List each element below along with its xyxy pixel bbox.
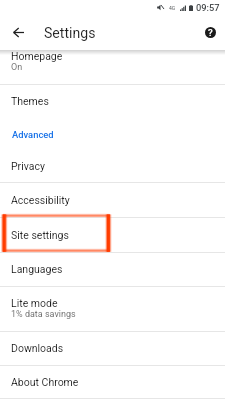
button[interactable]: Homepage — [0, 50, 225, 84]
staticText: On — [11, 62, 23, 73]
staticText: 1% data savings — [11, 309, 76, 320]
button[interactable]: About Chrome — [0, 365, 225, 398]
staticText: Site settings — [11, 229, 69, 241]
button[interactable]: Downloads — [0, 331, 225, 365]
staticText: Themes — [11, 95, 49, 107]
staticText: About Chrome — [11, 376, 79, 388]
staticText: Settings — [44, 25, 96, 42]
button[interactable]: Languages — [0, 252, 225, 286]
button[interactable]: Privacy — [0, 149, 225, 182]
staticText: Accessibility — [11, 194, 70, 206]
button[interactable]: Site settings — [0, 217, 225, 252]
staticText: Lite mode — [11, 297, 58, 309]
button[interactable]: Themes — [0, 84, 225, 118]
button[interactable]: Navigate up — [6, 20, 30, 44]
staticText: 4G — [169, 5, 176, 11]
staticText: 09:57 — [196, 2, 220, 13]
staticText: Downloads — [11, 342, 64, 354]
staticText: Advanced — [12, 129, 54, 140]
staticText: Homepage — [11, 50, 63, 62]
button[interactable]: Help and feedback — [200, 22, 220, 42]
button[interactable]: Accessibility — [0, 182, 225, 217]
staticText: ? — [208, 27, 213, 38]
staticText: Languages — [11, 263, 63, 275]
staticText: Privacy — [11, 160, 45, 172]
button[interactable]: Lite mode — [0, 286, 225, 331]
